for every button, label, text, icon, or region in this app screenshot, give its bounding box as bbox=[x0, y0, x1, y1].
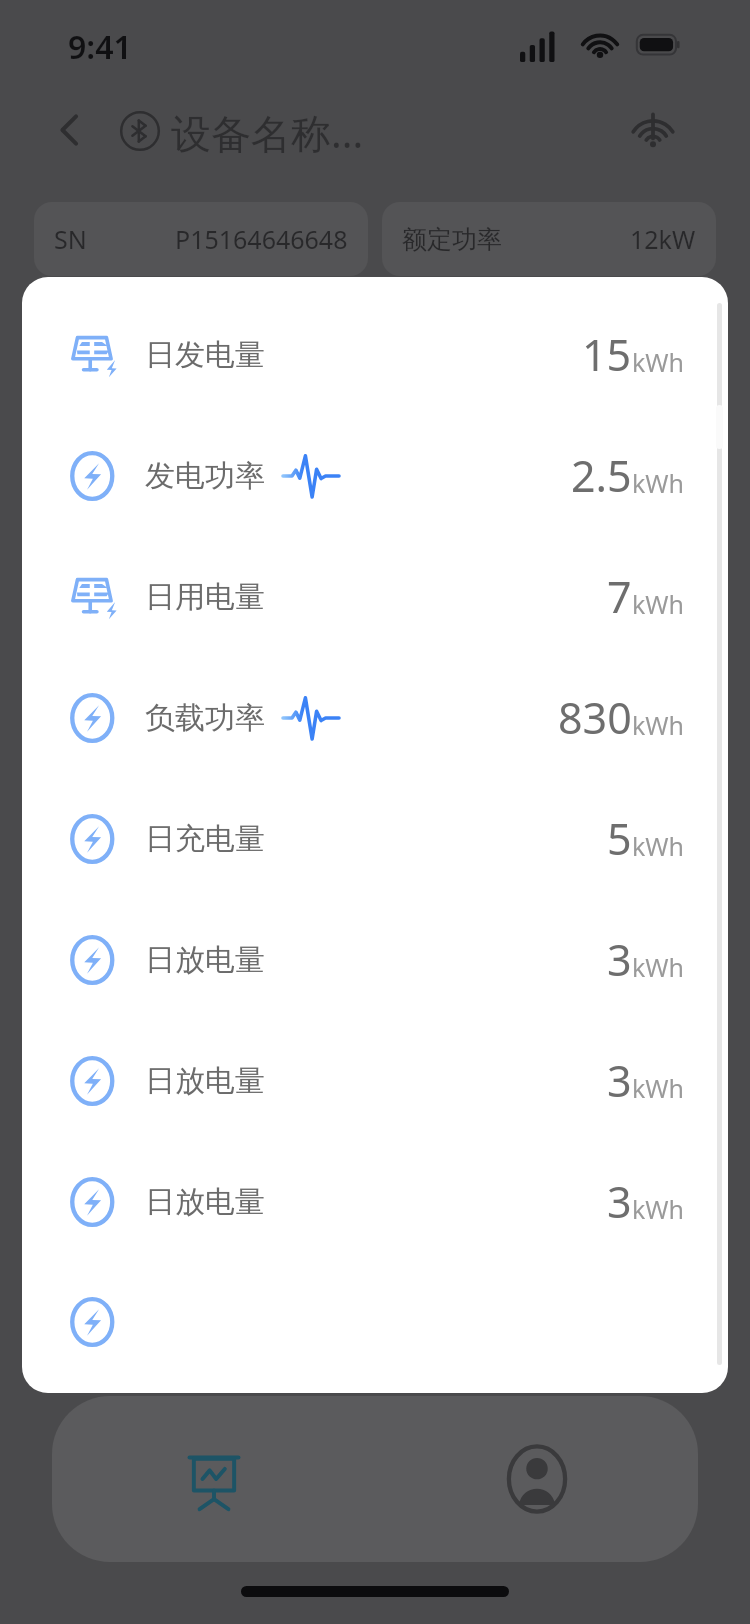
staticText: 日充电量 bbox=[145, 820, 265, 858]
staticText: 3 bbox=[607, 1172, 632, 1231]
staticText: kWh bbox=[632, 950, 685, 984]
button[interactable]: 日放电量 bbox=[41, 908, 709, 1011]
staticText: kWh bbox=[632, 466, 685, 500]
button[interactable]: 发电功率 bbox=[41, 424, 709, 527]
staticText: 9:41 bbox=[68, 25, 132, 69]
button[interactable]: SN bbox=[34, 202, 368, 276]
button[interactable]: 日发电量 bbox=[41, 303, 709, 406]
button[interactable]: 日放电量 bbox=[41, 1150, 709, 1253]
staticText: 2.5 bbox=[571, 446, 632, 505]
staticText: 日放电量 bbox=[145, 1062, 265, 1100]
staticText: 日放电量 bbox=[145, 1183, 265, 1221]
staticText: 日发电量 bbox=[145, 336, 265, 374]
staticText: 3 bbox=[607, 930, 632, 989]
button[interactable] bbox=[41, 1271, 709, 1374]
staticText: 12kW bbox=[630, 222, 696, 256]
staticText: 额定功率 bbox=[402, 224, 502, 255]
staticText: kWh bbox=[632, 708, 685, 742]
staticText: 830 bbox=[558, 688, 632, 747]
button[interactable]: Signal bbox=[626, 104, 680, 158]
button[interactable]: 日用电量 bbox=[41, 545, 709, 648]
staticText: 设备名称... bbox=[171, 105, 364, 160]
staticText: kWh bbox=[632, 587, 685, 621]
staticText: P15164646648 bbox=[175, 222, 348, 256]
staticText: kWh bbox=[632, 829, 685, 863]
button[interactable]: Back bbox=[40, 100, 100, 160]
staticText: 日用电量 bbox=[145, 578, 265, 616]
button[interactable]: 额定功率 bbox=[382, 202, 716, 276]
staticText: kWh bbox=[632, 345, 685, 379]
staticText: 负载功率 bbox=[145, 699, 265, 737]
button[interactable]: 电源 bbox=[34, 1276, 252, 1364]
staticText: 日放电量 bbox=[145, 941, 265, 979]
button[interactable]: 日放电量 bbox=[41, 1029, 709, 1132]
staticText: 发电功率 bbox=[145, 457, 265, 495]
staticText: kWh bbox=[632, 1071, 685, 1105]
button[interactable]: 负载功率 bbox=[41, 666, 709, 769]
button[interactable]: Profile bbox=[375, 1396, 698, 1562]
button[interactable]: Dashboard bbox=[52, 1396, 375, 1562]
staticText: 15 bbox=[582, 325, 632, 384]
staticText: 7 bbox=[607, 567, 632, 626]
staticText: SN bbox=[54, 222, 87, 256]
staticText: 3 bbox=[607, 1051, 632, 1110]
staticText: 5 bbox=[607, 809, 632, 868]
button[interactable]: 日充电量 bbox=[41, 787, 709, 890]
staticText: kWh bbox=[632, 1192, 685, 1226]
